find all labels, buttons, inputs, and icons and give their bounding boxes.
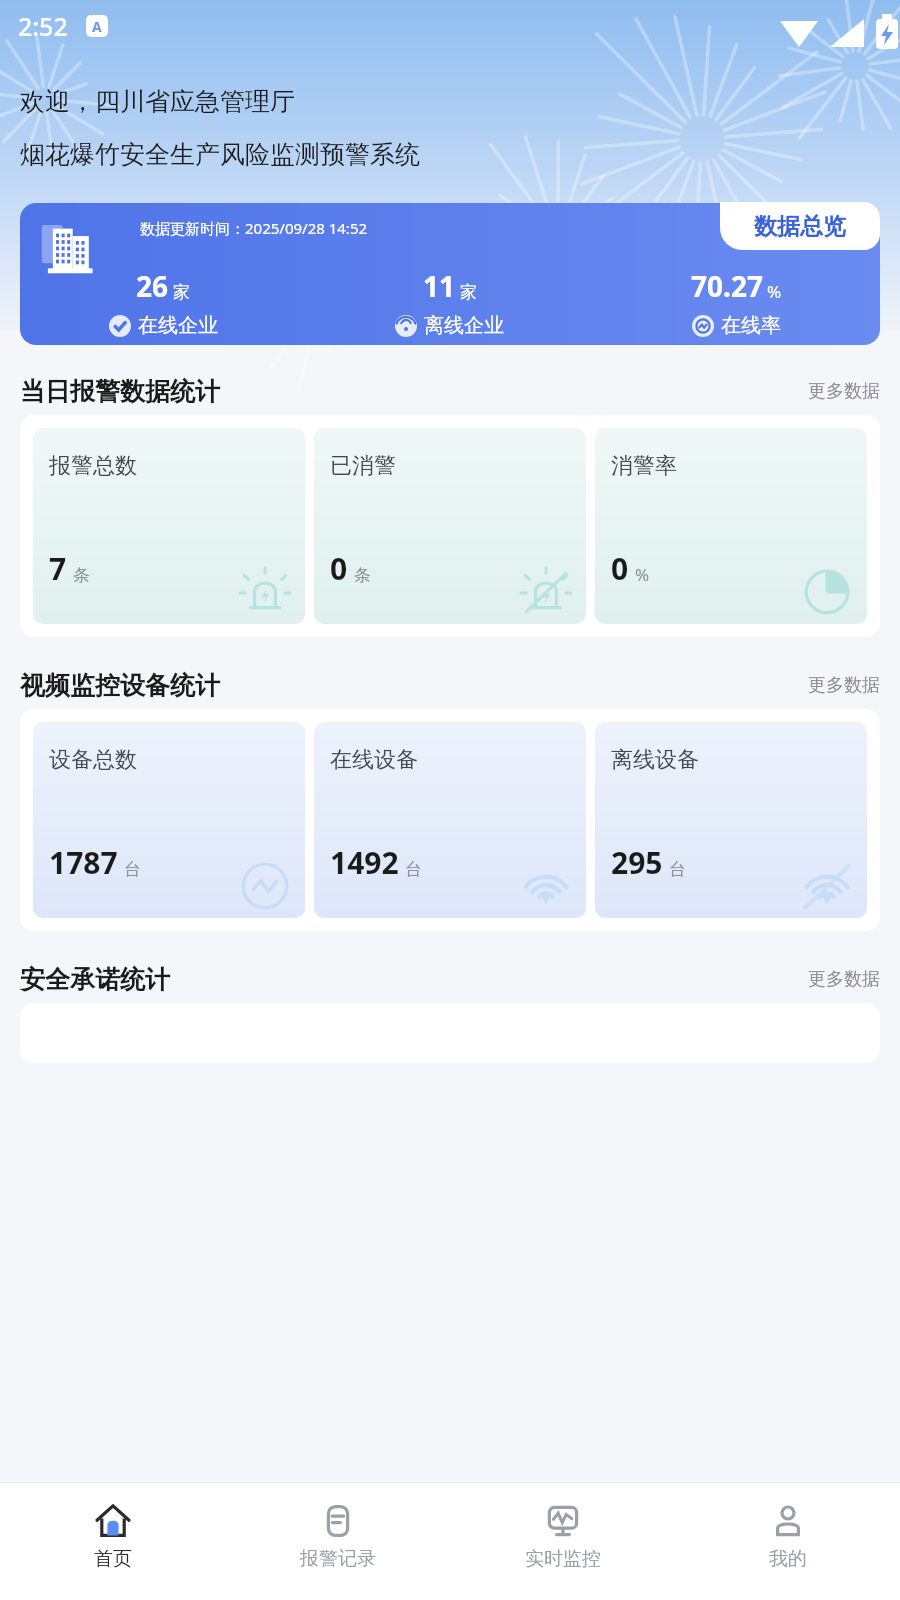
staticText: A bbox=[92, 17, 102, 36]
staticText: 0 bbox=[611, 548, 629, 589]
staticText: 7 bbox=[49, 548, 67, 589]
staticText: 更多数据 bbox=[808, 968, 880, 991]
staticText: % bbox=[635, 563, 650, 586]
button[interactable]: 更多数据 bbox=[808, 380, 880, 403]
staticText: 在线率 bbox=[721, 313, 781, 338]
staticText: 首页 bbox=[94, 1547, 132, 1571]
staticText: 条 bbox=[354, 565, 371, 586]
button[interactable]: 设备总数 bbox=[33, 722, 305, 918]
staticText: 数据更新时间：2025/09/28 14:52 bbox=[140, 218, 368, 238]
staticText: 1787 bbox=[49, 842, 118, 883]
staticText: 安全承诺统计 bbox=[20, 964, 170, 995]
button[interactable]: 数据总览 bbox=[720, 202, 880, 250]
button[interactable]: 已消警 bbox=[314, 428, 586, 624]
staticText: 台 bbox=[405, 859, 422, 880]
button[interactable]: 离线设备 bbox=[595, 722, 867, 918]
staticText: 条 bbox=[73, 565, 90, 586]
staticText: 数据总览 bbox=[754, 212, 846, 241]
staticText: 295 bbox=[611, 842, 663, 883]
staticText: 26 bbox=[136, 267, 169, 305]
staticText: 在线企业 bbox=[138, 313, 218, 338]
staticText: 台 bbox=[124, 859, 141, 880]
button[interactable]: 消警率 bbox=[595, 428, 867, 624]
staticText: 设备总数 bbox=[49, 746, 137, 774]
staticText: 当日报警数据统计 bbox=[20, 376, 220, 407]
staticText: 烟花爆竹安全生产风险监测预警系统 bbox=[20, 139, 420, 170]
staticText: 更多数据 bbox=[808, 674, 880, 697]
staticText: 实时监控 bbox=[525, 1547, 601, 1571]
staticText: 已消警 bbox=[330, 452, 396, 480]
button[interactable]: 实时监控 bbox=[450, 1483, 675, 1600]
staticText: 离线设备 bbox=[611, 746, 699, 774]
staticText: 1492 bbox=[330, 842, 399, 883]
staticText: 在线设备 bbox=[330, 746, 418, 774]
button[interactable]: 首页 bbox=[0, 1483, 225, 1600]
staticText: 消警率 bbox=[611, 452, 677, 480]
staticText: 视频监控设备统计 bbox=[20, 670, 220, 701]
staticText: 0 bbox=[330, 548, 348, 589]
staticText: 2:52 bbox=[18, 9, 68, 43]
staticText: 更多数据 bbox=[808, 380, 880, 403]
button[interactable]: 我的 bbox=[675, 1483, 900, 1600]
staticText: 家 bbox=[460, 282, 477, 303]
button[interactable]: 更多数据 bbox=[808, 968, 880, 991]
button[interactable]: 报警总数 bbox=[33, 428, 305, 624]
staticText: 我的 bbox=[769, 1547, 807, 1571]
staticText: 11 bbox=[423, 267, 456, 305]
button[interactable]: 数据更新时间：2025/09/28 14:52 bbox=[20, 203, 880, 345]
staticText: 台 bbox=[669, 859, 686, 880]
button[interactable]: 更多数据 bbox=[808, 674, 880, 697]
staticText: 报警总数 bbox=[49, 452, 137, 480]
staticText: % bbox=[767, 280, 782, 303]
button[interactable]: 在线设备 bbox=[314, 722, 586, 918]
staticText: 欢迎，四川省应急管理厅 bbox=[20, 86, 295, 117]
staticText: 离线企业 bbox=[424, 313, 504, 338]
staticText: 报警记录 bbox=[300, 1547, 376, 1571]
staticText: 家 bbox=[173, 282, 190, 303]
button[interactable]: 报警记录 bbox=[225, 1483, 450, 1600]
staticText: 70.27 bbox=[691, 267, 763, 305]
